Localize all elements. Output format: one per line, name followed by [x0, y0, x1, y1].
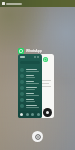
- button[interactable]: Screenshot: [32, 131, 43, 142]
- staticText: WhatsApp: [26, 49, 42, 53]
- button[interactable]: [18, 54, 42, 118]
- button[interactable]: WhatsApp: [18, 47, 42, 54]
- button[interactable]: Contact: [40, 54, 54, 118]
- other: Contact: [43, 108, 52, 117]
